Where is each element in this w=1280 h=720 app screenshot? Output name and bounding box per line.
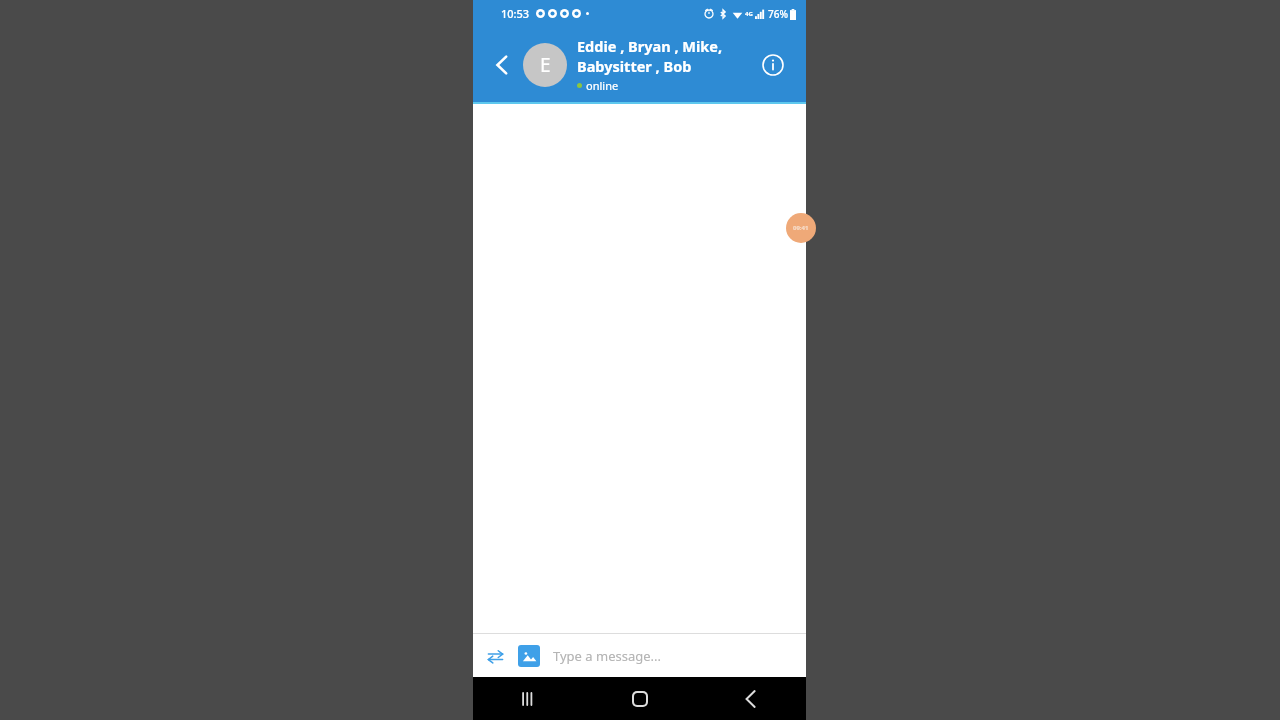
button[interactable]: Recent apps [473,677,584,720]
button[interactable]: Eddie , Bryan , Mike, [577,36,756,93]
button[interactable]: E [523,43,567,87]
button[interactable]: Conversation info [756,48,790,82]
staticText: Babysitter , Bob [577,56,692,76]
button[interactable]: Back [695,677,806,720]
button[interactable]: Attach image [518,645,540,667]
staticText: 4G [745,10,753,18]
staticText: 10:53 [501,6,530,21]
button[interactable]: Back [485,48,519,82]
staticText: E [540,52,551,78]
staticText: Eddie , Bryan , Mike, [577,36,723,56]
staticText: Type a message... [553,647,661,665]
staticText: online [586,78,619,93]
button[interactable]: Home [584,677,695,720]
button[interactable]: Type a message... [553,634,806,677]
button[interactable]: Switch input [481,642,509,670]
staticText: 76% [768,7,788,21]
staticText: 09:41 [793,224,809,232]
